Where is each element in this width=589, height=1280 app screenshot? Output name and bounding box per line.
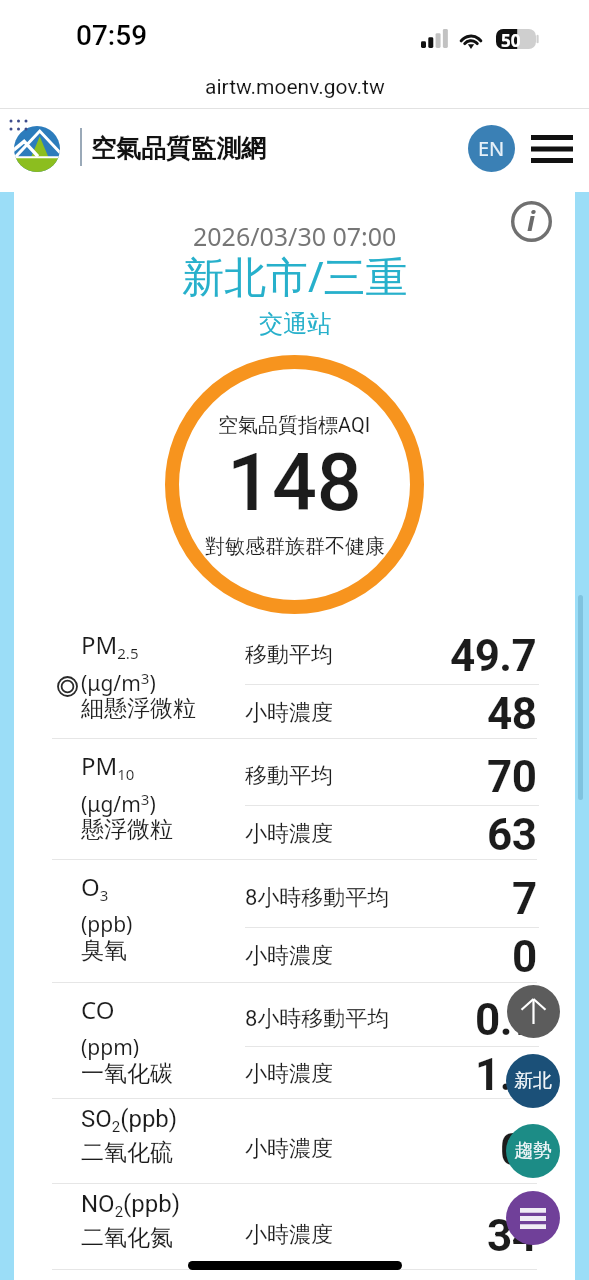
staticText: PM10: [81, 749, 135, 784]
staticText: SO2(ppb): [81, 1105, 178, 1135]
button[interactable]: Scroll to top: [507, 985, 560, 1038]
button[interactable]: Options menu: [506, 1191, 560, 1245]
button[interactable]: PM10: [0, 739, 589, 859]
staticText: 小時濃度: [245, 1135, 333, 1163]
staticText: 小時濃度: [245, 699, 333, 727]
staticText: 懸浮微粒: [81, 815, 173, 844]
staticText: 移動平均: [245, 641, 333, 669]
staticText: NO2(ppb): [81, 1190, 181, 1220]
staticText: 臭氧: [81, 936, 127, 965]
staticText: 63: [487, 809, 537, 861]
button[interactable]: CO: [0, 983, 589, 1098]
staticText: CO: [81, 993, 115, 1026]
staticText: 49.7: [450, 630, 537, 682]
staticText: 07:59: [76, 19, 148, 52]
staticText: 一氧化碳: [81, 1059, 173, 1088]
button[interactable]: Menu: [528, 125, 575, 172]
staticText: 1.6: [475, 1049, 537, 1100]
staticText: (ppm): [81, 1033, 140, 1062]
staticText: 0: [512, 931, 537, 983]
staticText: 二氧化硫: [81, 1138, 173, 1167]
staticText: 0.: [500, 1124, 537, 1176]
staticText: 7: [512, 873, 537, 925]
staticText: 對敏感群族群不健康: [205, 534, 385, 559]
staticText: 空氣品質指標AQI: [218, 413, 371, 438]
staticText: 70: [487, 751, 537, 803]
staticText: 小時濃度: [245, 1060, 333, 1088]
button[interactable]: 趨勢: [506, 1124, 560, 1178]
staticText: 0.9: [475, 994, 537, 1046]
staticText: O3: [81, 870, 109, 905]
staticText: PM2.5: [81, 628, 139, 663]
staticText: (μg/m3): [81, 789, 156, 818]
staticText: 8小時移動平均: [245, 1005, 390, 1033]
staticText: 新北: [514, 1069, 552, 1093]
staticText: (ppb): [81, 910, 133, 939]
staticText: 小時濃度: [245, 942, 333, 970]
button[interactable]: 新北: [506, 1054, 560, 1108]
staticText: 新北市/三重: [182, 247, 408, 304]
staticText: (μg/m3): [81, 668, 156, 697]
button[interactable]: NO2(ppb): [0, 1184, 589, 1269]
staticText: 移動平均: [245, 762, 333, 790]
button[interactable]: O3: [0, 860, 589, 982]
staticText: airtw.moenv.gov.tw: [205, 75, 385, 100]
staticText: 34: [487, 1210, 537, 1262]
staticText: 交通站: [259, 309, 331, 339]
staticText: 148: [227, 437, 362, 530]
staticText: 小時濃度: [245, 1221, 333, 1249]
button[interactable]: EN: [468, 125, 515, 172]
staticText: 空氣品質監測網: [91, 133, 266, 164]
staticText: 細懸浮微粒: [81, 694, 196, 723]
staticText: 8小時移動平均: [245, 884, 390, 912]
staticText: 50: [501, 29, 521, 49]
button[interactable]: PM2.5: [0, 618, 589, 738]
staticText: i: [527, 202, 536, 239]
staticText: 二氧化氮: [81, 1223, 173, 1252]
staticText: EN: [478, 135, 505, 162]
button[interactable]: SO2(ppb): [0, 1099, 589, 1183]
staticText: 2026/03/30 07:00: [193, 219, 397, 253]
staticText: 48: [487, 688, 537, 740]
staticText: 小時濃度: [245, 820, 333, 848]
button[interactable]: Info: [508, 198, 554, 244]
staticText: 趨勢: [514, 1139, 552, 1163]
